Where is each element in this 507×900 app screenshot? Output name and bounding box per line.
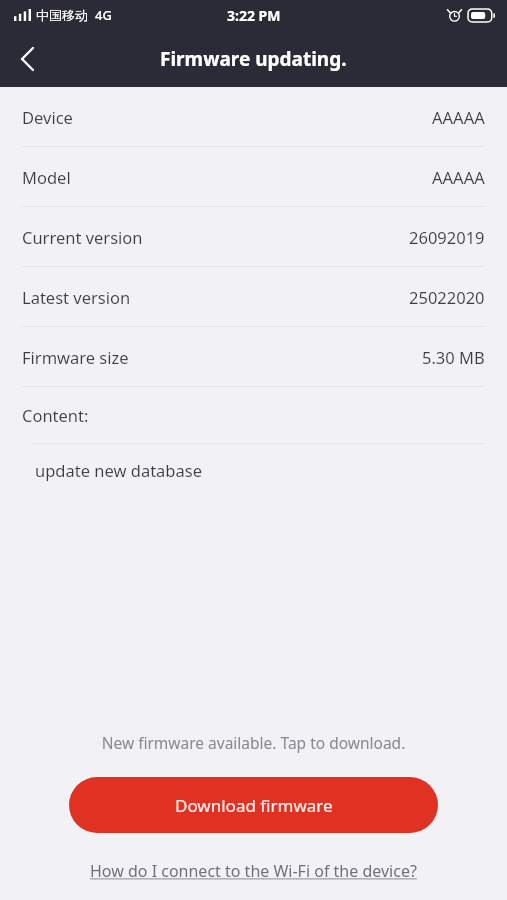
button[interactable]: Latest version <box>0 267 507 326</box>
staticText: update new database <box>35 459 202 481</box>
staticText: AAAAA <box>432 106 485 128</box>
staticText: Latest version <box>22 286 131 308</box>
staticText: Firmware updating. <box>160 46 347 72</box>
staticText: New firmware available. Tap to download. <box>0 732 507 753</box>
button[interactable]: Current version <box>0 207 507 266</box>
staticText: AAAAA <box>432 166 485 188</box>
button[interactable]: Download firmware <box>69 777 438 833</box>
staticText: 26092019 <box>409 226 485 248</box>
button[interactable]: How do I connect to the Wi-Fi of the dev… <box>90 860 417 882</box>
button[interactable]: Device <box>0 87 507 146</box>
staticText: 5.30 MB <box>422 346 485 368</box>
staticText: Content: <box>22 404 89 426</box>
staticText: Firmware size <box>22 346 129 368</box>
staticText: Model <box>22 166 71 188</box>
staticText: 中国移动 <box>36 7 88 23</box>
button[interactable]: Model <box>0 147 507 206</box>
staticText: 3:22 PM <box>227 6 281 25</box>
staticText: 4G <box>95 6 112 24</box>
staticText: 25022020 <box>409 286 485 308</box>
staticText: How do I connect to the Wi-Fi of the dev… <box>90 860 417 882</box>
staticText: Download firmware <box>175 794 333 817</box>
button[interactable]: Firmware size <box>0 327 507 386</box>
button[interactable]: Back <box>0 32 54 86</box>
staticText: Current version <box>22 226 143 248</box>
staticText: Device <box>22 106 73 128</box>
